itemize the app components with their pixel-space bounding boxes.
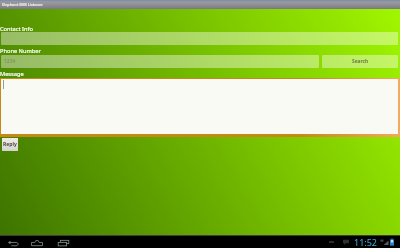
staticText: Reply xyxy=(3,141,17,148)
staticText: Phone Number xyxy=(0,47,41,55)
staticText: Search xyxy=(352,58,369,65)
button[interactable]: 1234 xyxy=(1,55,319,68)
staticText: Message xyxy=(0,70,24,78)
staticText: 1234 xyxy=(4,58,16,65)
staticText: Elephant SMS Listener xyxy=(2,2,43,7)
button[interactable]: Recents xyxy=(56,239,70,247)
button[interactable]: Back xyxy=(6,239,20,247)
button[interactable] xyxy=(1,32,398,45)
button[interactable]: Reply xyxy=(2,138,18,151)
staticText: 11:52 xyxy=(354,236,378,248)
staticText: Contact Info xyxy=(0,25,33,33)
button[interactable]: Search xyxy=(322,55,398,68)
button[interactable]: Home xyxy=(30,239,44,247)
